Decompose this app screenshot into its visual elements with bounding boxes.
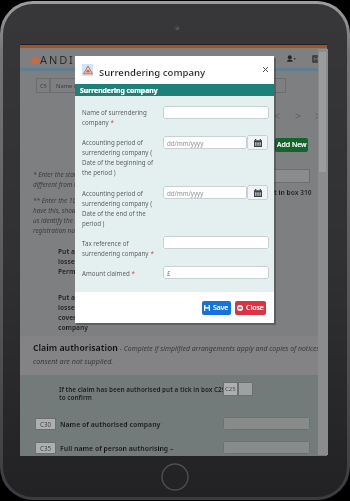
staticText: losses, non-trading deficits or charges … — [58, 257, 199, 266]
button[interactable]: C35 input — [223, 441, 310, 454]
staticText: t in box 310 — [274, 188, 312, 197]
button[interactable]: Amount field — [163, 266, 269, 279]
staticText: surrendering company — [82, 249, 149, 257]
staticText: ANDICA — [40, 52, 93, 67]
staticText: losses, non-trading deficits or charges — [58, 303, 183, 312]
staticText: registration number. — [33, 226, 91, 235]
button[interactable]: Close — [235, 301, 266, 315]
staticText: £ — [167, 269, 171, 277]
staticText: Put a tick in this box if the claim rela… — [58, 293, 197, 302]
staticText: Accounting period of — [82, 138, 143, 146]
staticText: company — [58, 323, 89, 332]
staticText: Save — [213, 303, 229, 313]
button[interactable]: Open calendar — [247, 185, 268, 200]
staticText: < — [274, 108, 281, 122]
staticText: company — [82, 118, 109, 126]
staticText: Name of surrendering company and account… — [56, 82, 214, 90]
staticText: Put a tick in this box if the claim rela… — [58, 247, 197, 256]
staticText: Date of the beginning of — [82, 158, 154, 166]
staticText: > — [295, 108, 302, 122]
staticText: |< — [248, 108, 261, 122]
staticText: Date of the end of the — [82, 209, 146, 217]
staticText: Permanent establishment in the UK — [58, 267, 176, 276]
button[interactable]: C30 input — [223, 417, 310, 430]
button[interactable]: Text field — [163, 106, 269, 119]
staticText: surrendering company ( — [82, 148, 152, 156]
button[interactable]: Open calendar — [247, 135, 268, 150]
staticText: dd/mm/yyyy — [167, 189, 204, 197]
staticText: * Enter the start date of the accounting… — [33, 170, 170, 179]
staticText: have this, show the company registration… — [33, 206, 195, 215]
staticText: * — [130, 269, 136, 277]
staticText: Close — [246, 303, 264, 313]
button[interactable]: Input box 310 — [252, 169, 310, 183]
button[interactable]: Account — [286, 55, 296, 63]
staticText: C25 — [225, 385, 236, 393]
staticText: surrendering company ( — [82, 199, 152, 207]
staticText: * — [109, 118, 115, 126]
staticText: Claim authorisation — [33, 342, 118, 354]
staticText: us identify the company. Alternatively s… — [33, 216, 194, 225]
staticText: Full name of person authorising – — [60, 444, 174, 453]
staticText: >| — [315, 108, 328, 122]
staticText: the period ) — [82, 168, 116, 176]
button[interactable]: Close dialog — [259, 63, 271, 75]
staticText: to confirm — [59, 393, 92, 401]
staticText: If the claim has been authorised put a t… — [59, 385, 226, 393]
staticText: Surrendering company — [99, 66, 206, 79]
staticText: Amount claimed — [82, 269, 130, 277]
button[interactable]: Date field — [163, 136, 247, 149]
button[interactable]: Menu — [313, 56, 319, 62]
staticText: Tax reference of — [82, 239, 129, 247]
staticText: C5 — [40, 82, 47, 89]
staticText: Surrendering company — [80, 86, 158, 95]
staticText: C30 — [40, 420, 51, 428]
staticText: Name of surrendering — [82, 108, 147, 116]
staticText: C35 — [40, 444, 51, 452]
staticText: * — [149, 249, 155, 257]
staticText: Name of authorised company — [60, 420, 161, 429]
button[interactable]: Text field — [163, 236, 269, 249]
button[interactable]: Date field — [163, 186, 247, 199]
staticText: different from that covered by this retu… — [33, 180, 149, 189]
staticText: period ) — [82, 219, 105, 227]
staticText: Accounting period of — [82, 189, 143, 197]
staticText: consent are not supplied. — [33, 356, 114, 366]
button[interactable]: Tick box C25 — [238, 382, 253, 396]
button[interactable]: Save — [202, 301, 231, 315]
button[interactable]: Add New — [275, 138, 308, 152]
staticText: ** Enter the 10-digit Unique Taxpayer Re… — [33, 196, 189, 205]
staticText: covered by an election of a surrendering — [58, 313, 191, 322]
staticText: dd/mm/yyyy — [167, 139, 204, 147]
staticText: Add New — [277, 140, 307, 150]
staticText: - Complete if simplified arrangements ap… — [118, 344, 328, 353]
